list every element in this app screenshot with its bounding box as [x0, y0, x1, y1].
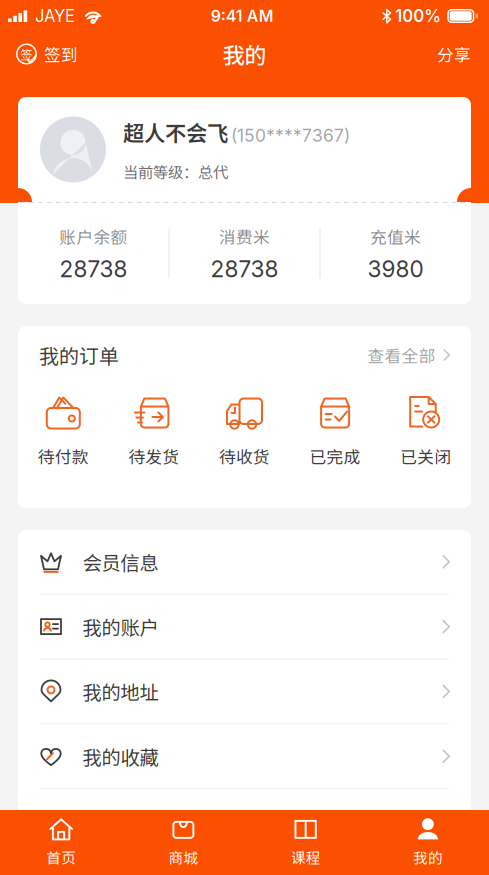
button[interactable]: 分享 — [423, 32, 489, 76]
staticText: (150****7367) — [231, 125, 350, 146]
staticText: 3980 — [367, 255, 423, 283]
button[interactable]: 待发货 — [109, 384, 199, 508]
staticText: 我的 — [222, 38, 266, 70]
staticText: 我的订单 — [39, 340, 119, 369]
staticText: JAYE — [35, 6, 75, 26]
staticText: 28738 — [59, 255, 127, 283]
staticText: 我的账户 — [82, 613, 158, 641]
button[interactable]: 已完成 — [290, 384, 380, 508]
staticText: 待付款 — [38, 444, 89, 468]
button[interactable]: 首页 — [0, 810, 122, 875]
staticText: 已关闭 — [400, 444, 451, 468]
button[interactable]: 我的收藏 — [18, 724, 471, 789]
staticText: 9:41 AM — [211, 6, 274, 26]
staticText: 签 — [20, 45, 32, 63]
staticText: 待收货 — [219, 444, 270, 468]
button[interactable]: 我的 — [367, 810, 489, 875]
staticText: 账户余额 — [59, 224, 127, 248]
staticText: 当前等级：总代 — [123, 160, 228, 182]
staticText: 分享 — [437, 42, 471, 66]
button[interactable]: 签 — [0, 32, 92, 76]
staticText: 消费米 — [219, 224, 270, 248]
staticText: 100% — [395, 6, 441, 26]
staticText: 商城 — [168, 846, 198, 868]
button[interactable]: 课程 — [244, 810, 367, 875]
button[interactable]: 会员信息 — [18, 530, 471, 595]
staticText: 课程 — [291, 846, 321, 868]
button[interactable]: 我的账户 — [18, 595, 471, 659]
button[interactable]: 商城 — [122, 810, 244, 875]
button[interactable]: 待收货 — [199, 384, 290, 508]
staticText: 我的 — [413, 846, 443, 868]
staticText: 查看全部 — [367, 343, 435, 367]
button[interactable]: 我的订单 — [18, 326, 471, 384]
staticText: 待发货 — [128, 444, 179, 468]
staticText: 我的收藏 — [82, 742, 158, 770]
staticText: 会员信息 — [82, 548, 158, 576]
staticText: 我的地址 — [82, 677, 158, 705]
staticText: 超人不会飞 — [123, 116, 228, 147]
staticText: 签到 — [44, 42, 78, 66]
button[interactable]: 待付款 — [18, 384, 109, 508]
staticText: 28738 — [210, 255, 278, 283]
staticText: 已完成 — [310, 444, 361, 468]
button[interactable]: 我的地址 — [18, 659, 471, 724]
button[interactable]: 已关闭 — [380, 384, 471, 508]
staticText: 首页 — [46, 846, 76, 868]
staticText: 充值米 — [370, 224, 421, 248]
